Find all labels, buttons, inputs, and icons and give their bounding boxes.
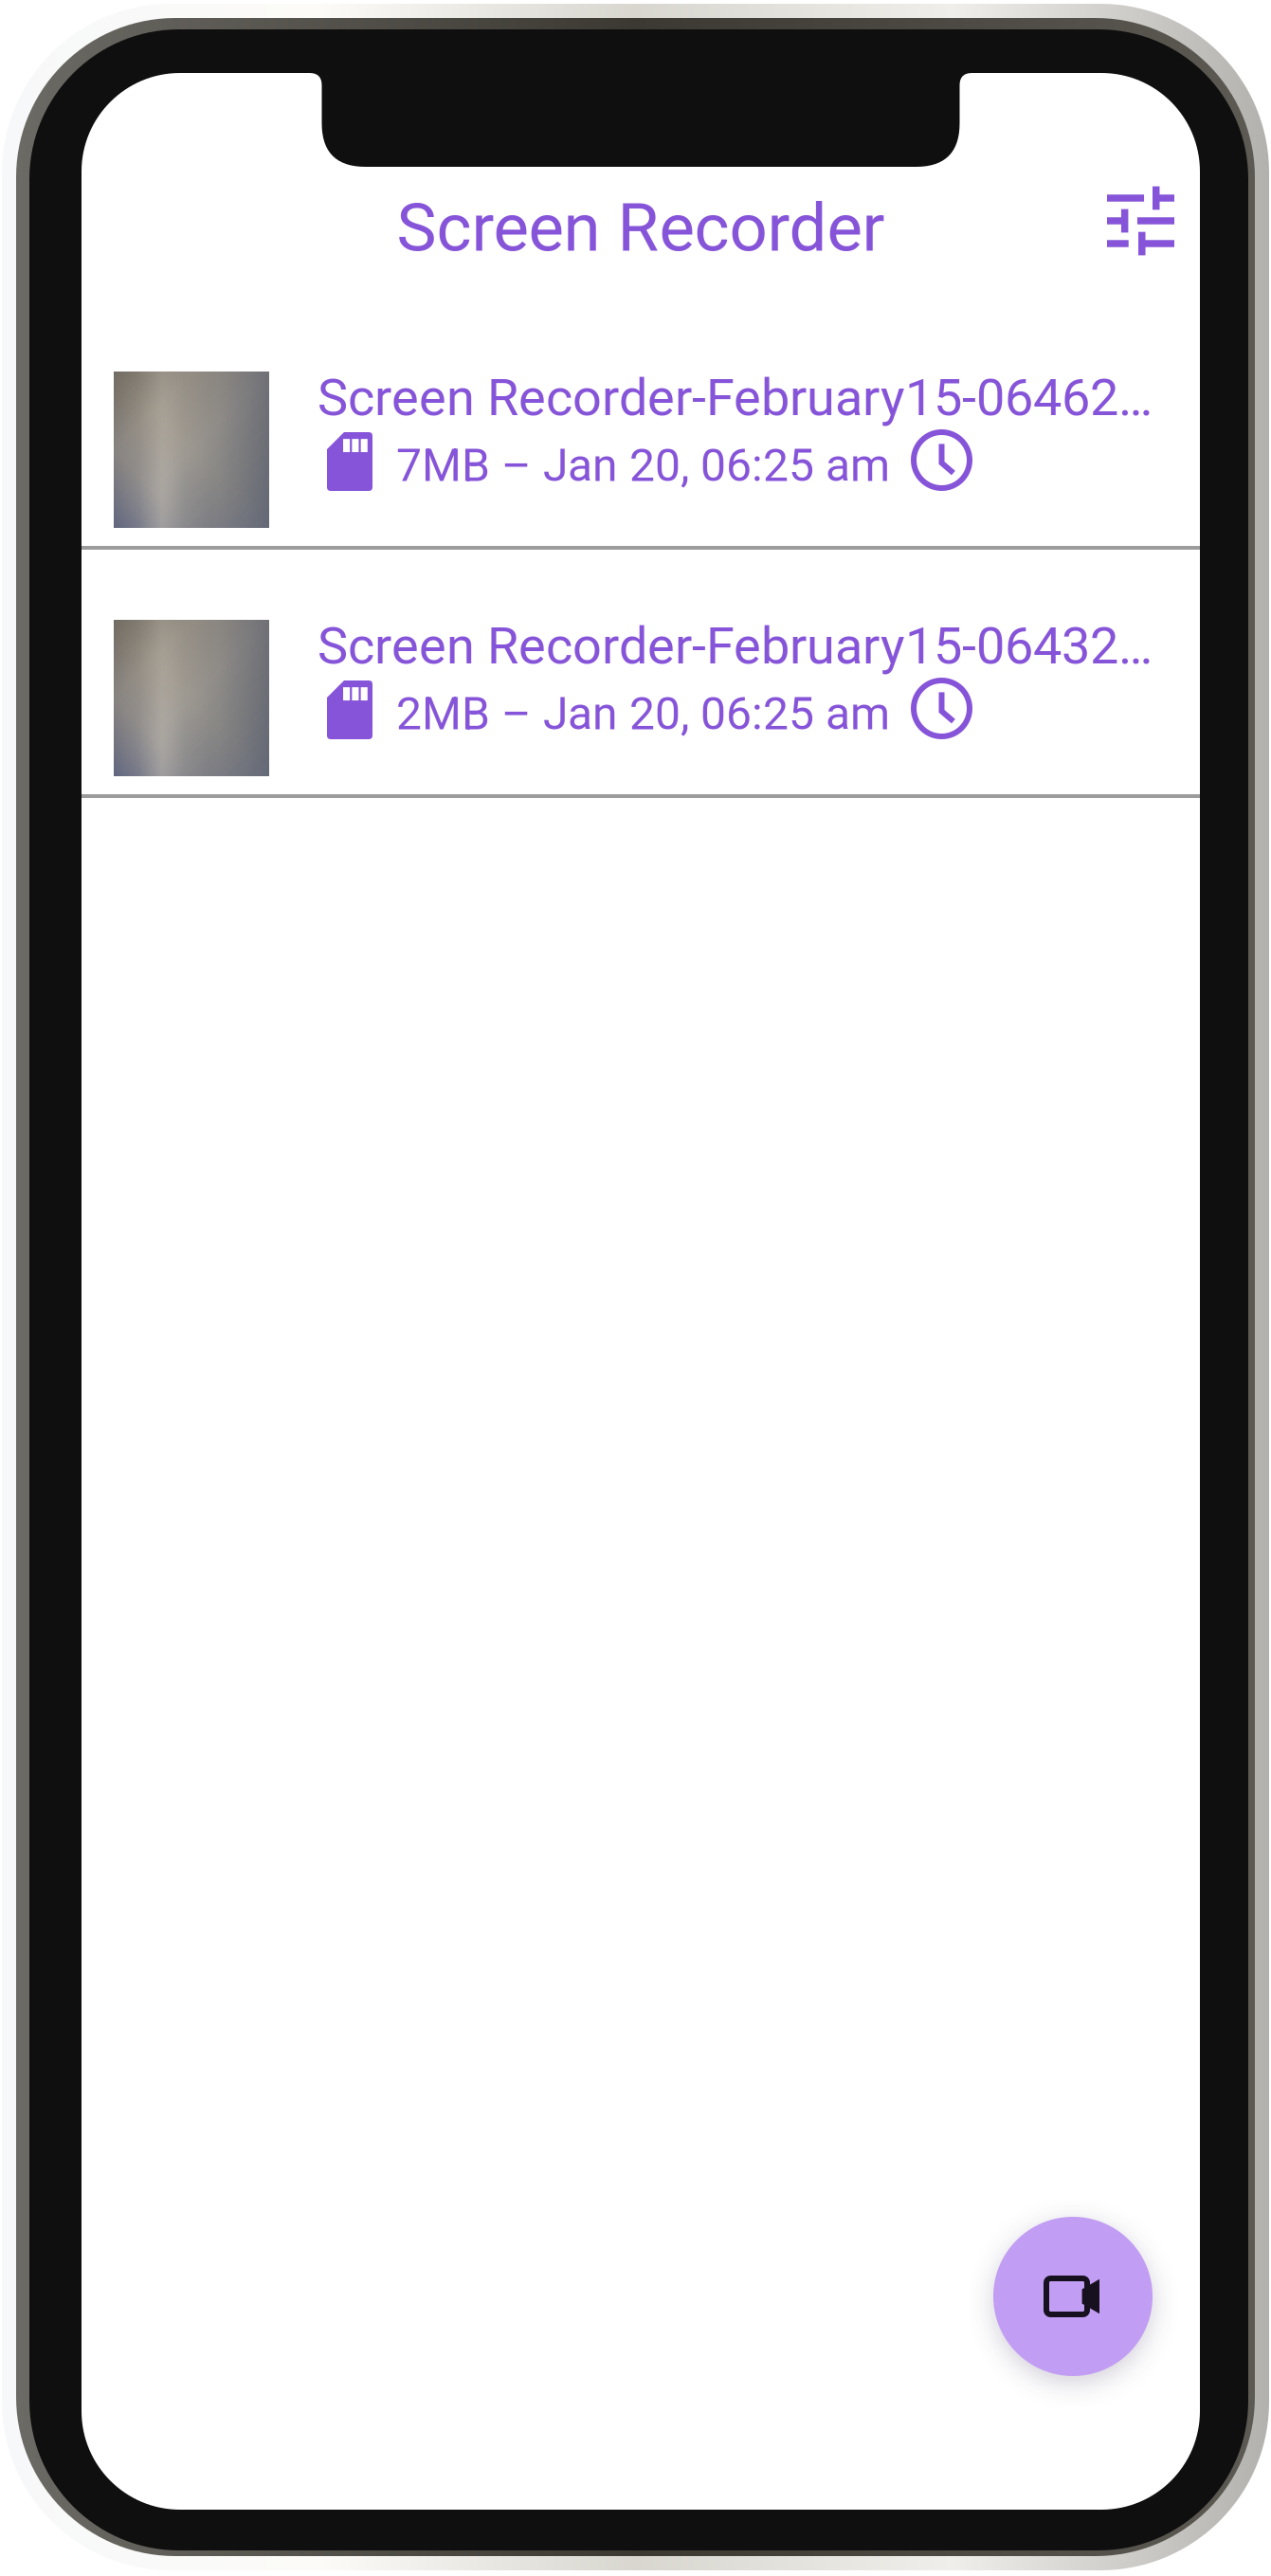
staticText: Screen Recorder-February15-06462… — [318, 368, 1153, 428]
staticText: Screen Recorder-February15-06432… — [318, 616, 1153, 676]
staticText: 2MB – Jan 20, 06:25 am — [396, 687, 890, 740]
staticText: Screen Recorder — [397, 189, 885, 267]
button[interactable]: Screen Recorder-February15-06432… — [82, 550, 1200, 794]
button[interactable]: Settings — [1092, 172, 1189, 269]
button[interactable]: Record screen — [993, 2217, 1153, 2376]
staticText: 7MB – Jan 20, 06:25 am — [396, 439, 890, 492]
button[interactable]: Screen Recorder-February15-06462… — [82, 301, 1200, 546]
